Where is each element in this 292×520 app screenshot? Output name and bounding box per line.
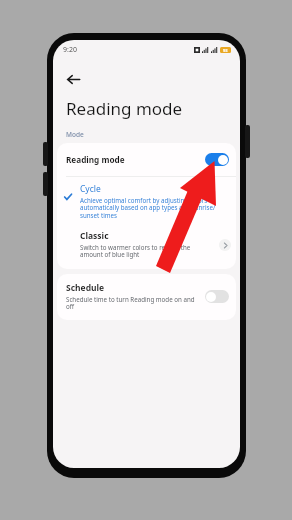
staticText: Schedule: [66, 282, 105, 294]
button[interactable]: Back: [60, 66, 86, 92]
button[interactable]: Reading mode: [57, 143, 236, 176]
button[interactable]: Classic: [57, 225, 236, 269]
staticText: Mode: [66, 130, 84, 139]
staticText: Cycle: [80, 183, 101, 195]
other: Open Classic: [219, 239, 231, 251]
staticText: Schedule time to turn Reading mode on an…: [66, 295, 195, 311]
button[interactable]: Schedule toggle, off: [205, 290, 229, 303]
button[interactable]: Reading mode toggle, on: [205, 153, 229, 166]
staticText: 93: [223, 48, 228, 53]
staticText: Classic: [80, 230, 109, 242]
staticText: Reading mode: [66, 97, 183, 120]
staticText: Switch to warmer colors to reduce the am…: [80, 243, 212, 259]
button[interactable]: Cycle: [57, 177, 236, 225]
staticText: Reading mode: [66, 154, 205, 165]
staticText: Achieve optimal comfort by adjusting col…: [80, 196, 222, 220]
staticText: 9:20: [63, 45, 77, 55]
button[interactable]: Schedule: [57, 274, 236, 320]
